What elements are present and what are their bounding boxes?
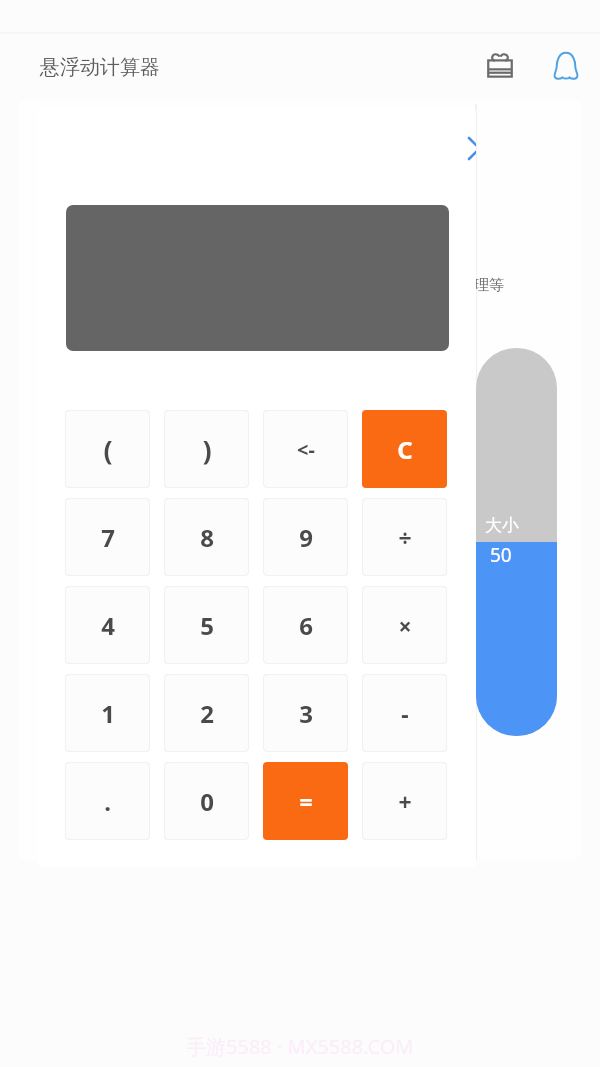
staticText: 0: [200, 785, 214, 818]
button[interactable]: Display: [66, 205, 449, 351]
staticText: 5: [200, 609, 214, 642]
staticText: 50: [490, 542, 512, 568]
button[interactable]: 5: [165, 587, 248, 663]
staticText: 悬浮动计算器: [40, 55, 160, 80]
button[interactable]: =: [263, 762, 348, 840]
button[interactable]: .: [66, 763, 149, 839]
staticText: 6: [299, 609, 313, 642]
staticText: 手游5588 · MX5588.COM: [186, 1033, 414, 1060]
staticText: 7: [101, 521, 115, 554]
staticText: 4: [101, 609, 115, 642]
staticText: ÷: [398, 522, 412, 553]
staticText: 1: [101, 697, 115, 730]
button[interactable]: 1: [66, 675, 149, 751]
staticText: 2: [200, 697, 214, 730]
button[interactable]: QQ: [544, 44, 588, 88]
staticText: +: [398, 786, 412, 817]
staticText: 理等: [474, 276, 504, 295]
staticText: (: [103, 431, 113, 468]
button[interactable]: ÷: [363, 499, 446, 575]
button[interactable]: ×: [363, 587, 446, 663]
staticText: 8: [200, 521, 214, 554]
button[interactable]: 2: [165, 675, 248, 751]
staticText: C: [397, 433, 413, 466]
button[interactable]: Close: [456, 125, 476, 171]
staticText: -: [401, 698, 409, 729]
staticText: =: [299, 786, 313, 817]
button[interactable]: 7: [66, 499, 149, 575]
staticText: <-: [297, 436, 315, 463]
staticText: 9: [299, 521, 313, 554]
staticText: 3: [299, 697, 313, 730]
staticText: .: [104, 785, 111, 818]
button[interactable]: 9: [264, 499, 347, 575]
button[interactable]: 8: [165, 499, 248, 575]
button[interactable]: C: [362, 410, 447, 488]
button[interactable]: ): [165, 411, 248, 487]
staticText: ): [202, 431, 212, 468]
staticText: 大小: [485, 515, 519, 536]
button[interactable]: 6: [264, 587, 347, 663]
button[interactable]: Size slider: [476, 348, 557, 736]
button[interactable]: -: [363, 675, 446, 751]
button[interactable]: 0: [165, 763, 248, 839]
button[interactable]: +: [363, 763, 446, 839]
button[interactable]: (: [66, 411, 149, 487]
button[interactable]: <-: [264, 411, 347, 487]
button[interactable]: Gifts: [478, 44, 522, 88]
button[interactable]: 4: [66, 587, 149, 663]
button[interactable]: 3: [264, 675, 347, 751]
staticText: ×: [398, 610, 412, 641]
